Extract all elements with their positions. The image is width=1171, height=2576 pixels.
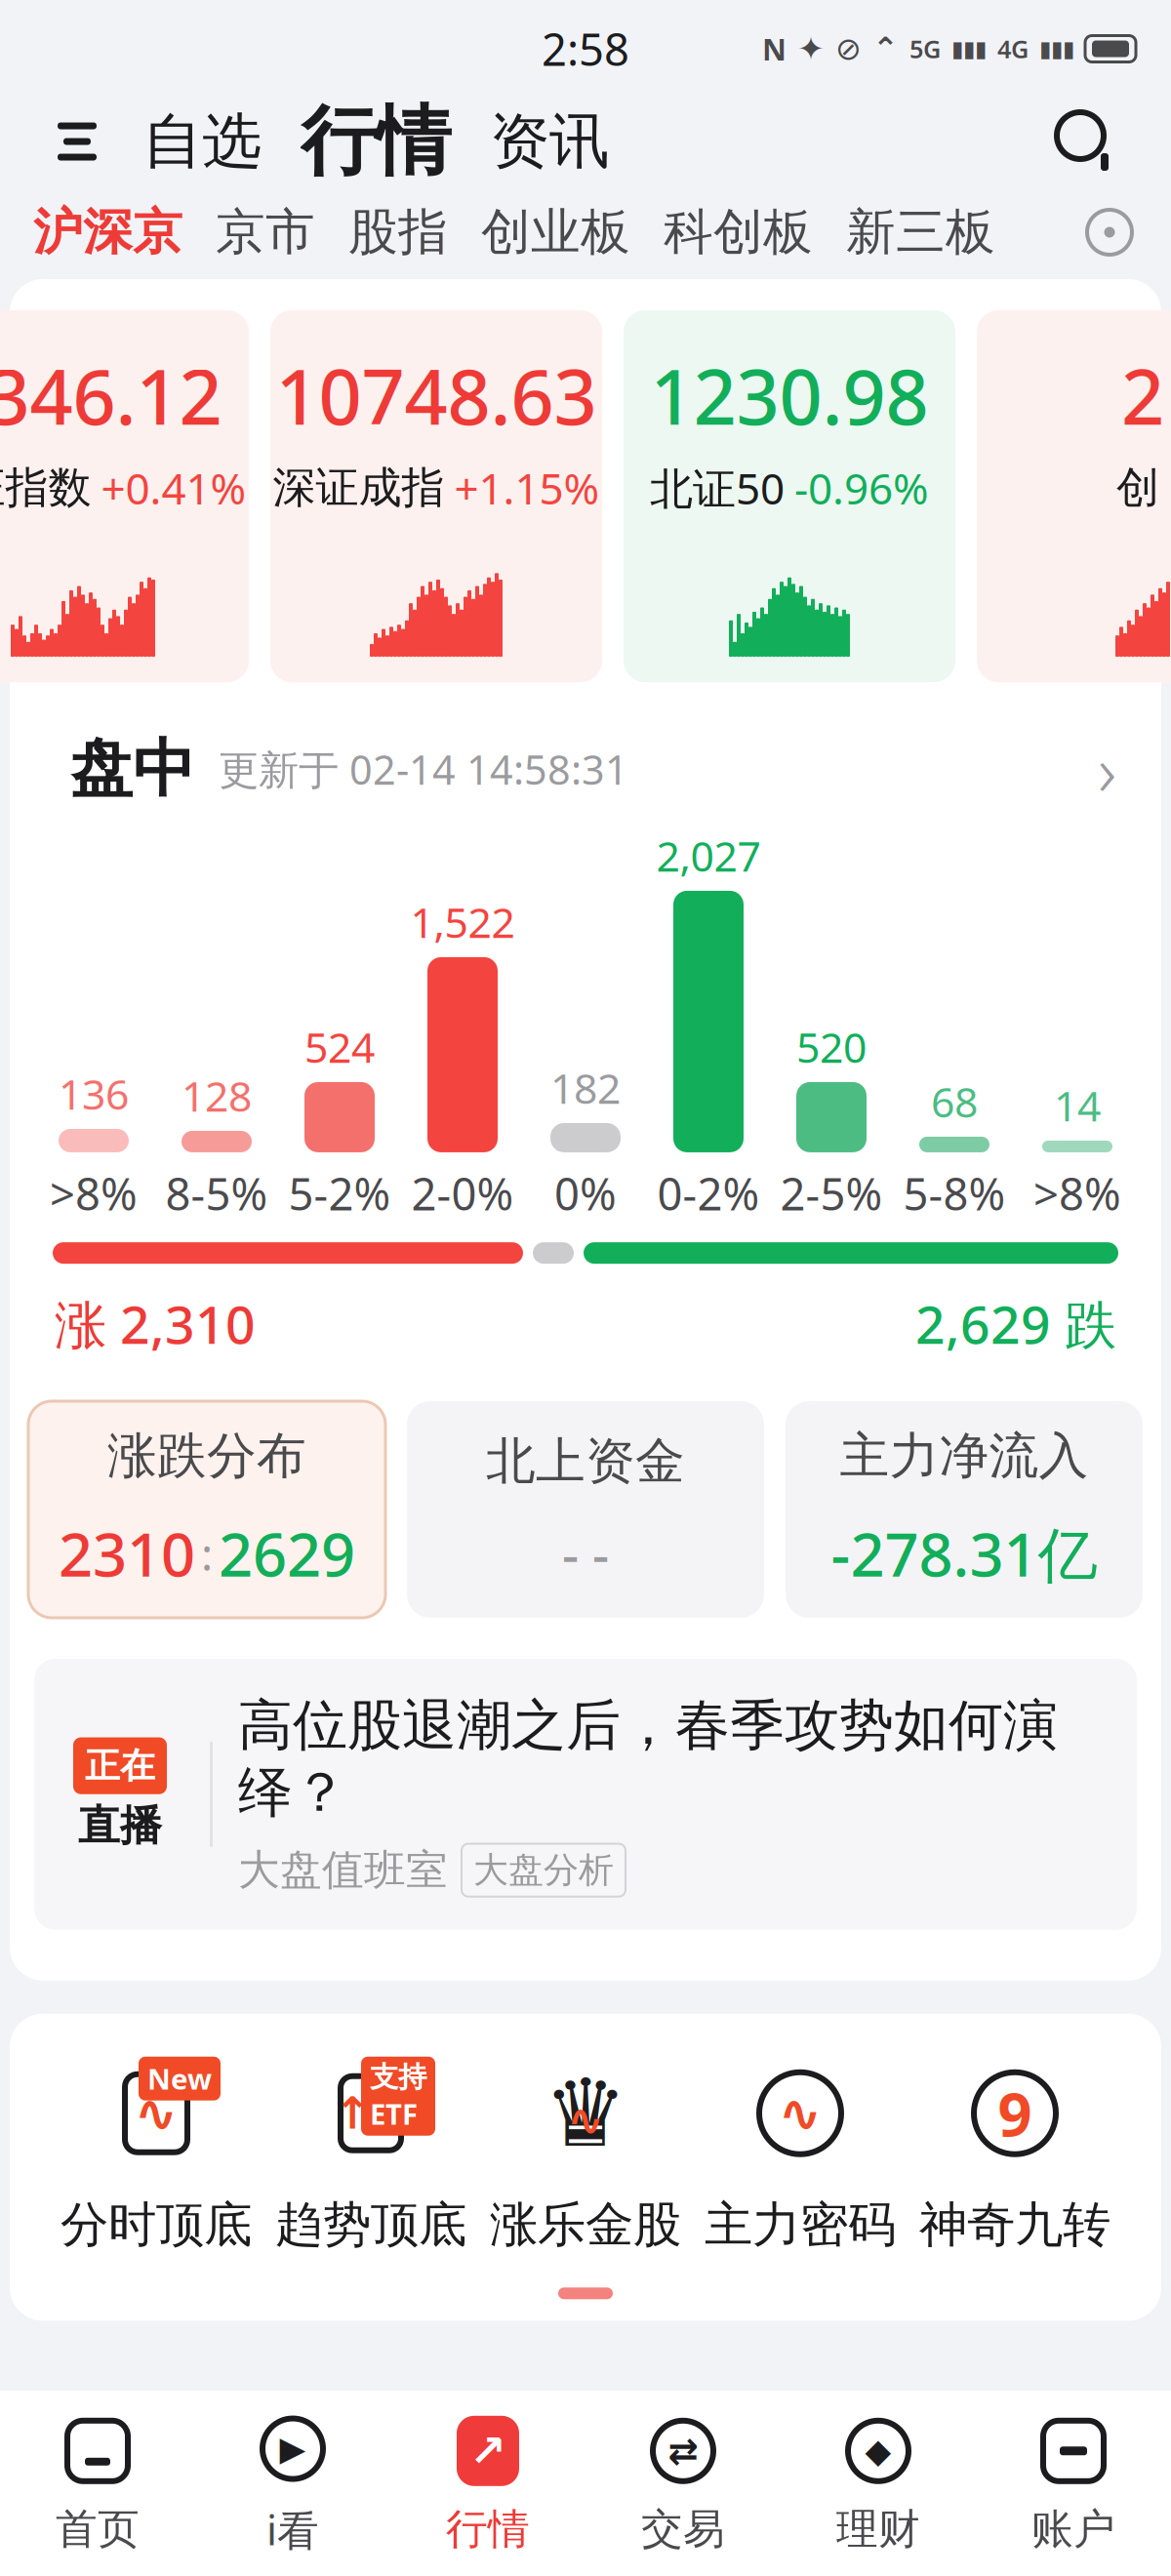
button[interactable]: 沪深京	[33, 192, 182, 272]
staticText: 正在	[85, 1744, 155, 1787]
staticText: 沪深京	[33, 202, 182, 263]
button[interactable]: Search	[1042, 98, 1130, 185]
staticText: 2,629 跌	[915, 1289, 1116, 1358]
staticText: 京市	[216, 202, 315, 263]
button[interactable]: 新三板	[846, 192, 995, 272]
button[interactable]: 科创板	[664, 192, 813, 272]
staticText: 136	[59, 1066, 129, 1121]
staticText: ♛	[544, 2060, 627, 2166]
staticText: ▶	[280, 2430, 306, 2468]
staticText: 1,522	[410, 894, 515, 949]
button[interactable]: 盘中	[10, 715, 1161, 823]
staticText: 主力密码	[705, 2195, 896, 2254]
button[interactable]: 9	[910, 2057, 1119, 2254]
staticText: 支持ETF	[370, 2060, 426, 2133]
button[interactable]: 1230.98	[624, 310, 955, 682]
staticText: 趋势顶底	[275, 2195, 466, 2254]
staticText: 资讯	[490, 105, 609, 178]
staticText: 2:58	[542, 19, 629, 78]
staticText: 首页	[56, 2504, 140, 2555]
staticText: +0.41%	[101, 459, 246, 516]
staticText: ∿	[778, 2084, 822, 2143]
staticText: 创业板	[481, 202, 630, 263]
staticText: 新三板	[846, 202, 995, 263]
staticText: 北上资金	[486, 1431, 685, 1492]
button[interactable]: ↗	[390, 2405, 585, 2561]
staticText: 4G	[997, 32, 1029, 65]
staticText: 182	[550, 1060, 621, 1115]
staticText: 2310	[59, 1514, 195, 1593]
staticText: 科创板	[664, 202, 813, 263]
staticText: 自选	[142, 105, 262, 178]
staticText: ∿	[134, 2084, 178, 2143]
staticText: 128	[182, 1068, 252, 1123]
button[interactable]: More categories	[1077, 200, 1142, 264]
staticText: +1.15%	[454, 459, 600, 516]
button[interactable]: 2	[977, 310, 1171, 682]
staticText: 9	[998, 2073, 1032, 2153]
staticText: i看	[266, 2501, 319, 2557]
staticText: 2629	[219, 1514, 355, 1593]
button[interactable]: ▶	[195, 2405, 390, 2561]
button[interactable]: 北上资金	[407, 1401, 764, 1618]
button[interactable]: 行情	[283, 98, 468, 185]
button[interactable]: 京市	[216, 192, 315, 272]
button[interactable]: ⇄	[585, 2405, 781, 2561]
staticText: -278.31亿	[831, 1514, 1097, 1593]
staticText: 5-8%	[903, 1164, 1006, 1223]
button[interactable]: ↑↓	[266, 2057, 475, 2254]
button[interactable]: ◆	[781, 2405, 976, 2561]
button[interactable]: 自选	[121, 98, 283, 185]
staticText: 交易	[641, 2504, 725, 2555]
staticText: New	[147, 2060, 212, 2098]
staticText: >8%	[1033, 1164, 1121, 1223]
button[interactable]: 正在	[34, 1659, 1137, 1930]
staticText: :	[201, 1524, 213, 1583]
staticText: ↑↓	[334, 2088, 408, 2138]
staticText: 大盘分析	[473, 1849, 614, 1892]
button[interactable]: ♛	[481, 2057, 690, 2254]
staticText: 涨 2,310	[55, 1289, 256, 1358]
staticText: ▮▮▮	[951, 36, 987, 61]
staticText: 524	[304, 1019, 375, 1074]
staticText: ›	[1098, 722, 1116, 816]
button[interactable]: 创业板	[481, 192, 630, 272]
staticText: 上证指数	[0, 461, 91, 514]
button[interactable]: 10748.63	[270, 310, 602, 682]
button[interactable]: Menu	[33, 98, 121, 185]
staticText: 10748.63	[276, 345, 597, 446]
staticText: 理财	[836, 2504, 920, 2555]
button[interactable]: 主力净流入	[786, 1401, 1143, 1618]
staticText: ↗	[469, 2426, 506, 2476]
staticText: ⊘	[835, 31, 862, 66]
staticText: 深证成指	[273, 461, 444, 514]
staticText: 2-0%	[411, 1164, 514, 1223]
staticText: 更新于 02-14 14:58:31	[195, 742, 628, 796]
staticText: 5G	[909, 32, 941, 65]
staticText: ⇄	[668, 2430, 698, 2472]
button[interactable]: 3346.12	[0, 310, 249, 682]
staticText: ∿	[567, 2095, 604, 2145]
button[interactable]: ∿	[52, 2057, 261, 2254]
staticText: 2,027	[656, 828, 761, 883]
staticText: ◆	[865, 2432, 891, 2470]
staticText: 行情	[301, 95, 451, 188]
button[interactable]: 资讯	[468, 98, 630, 185]
staticText: 账户	[1031, 2504, 1115, 2555]
button[interactable]: 首页	[0, 2405, 195, 2561]
staticText: 2-5%	[780, 1164, 883, 1223]
button[interactable]: 涨跌分布	[28, 1401, 385, 1618]
button[interactable]: 账户	[976, 2405, 1171, 2561]
staticText: >8%	[50, 1164, 138, 1223]
staticText: ✦	[797, 30, 825, 67]
staticText: 直播	[78, 1800, 162, 1851]
staticText: ▮▮▮	[1039, 36, 1074, 61]
staticText: 2	[1121, 345, 1164, 446]
staticText: 行情	[446, 2504, 530, 2555]
staticText: N	[762, 29, 787, 69]
staticText: 1230.98	[650, 345, 929, 446]
button[interactable]: 股指	[348, 192, 448, 272]
staticText: 分时顶底	[61, 2195, 252, 2254]
button[interactable]: ∿	[696, 2057, 905, 2254]
staticText: 主力净流入	[840, 1426, 1089, 1486]
